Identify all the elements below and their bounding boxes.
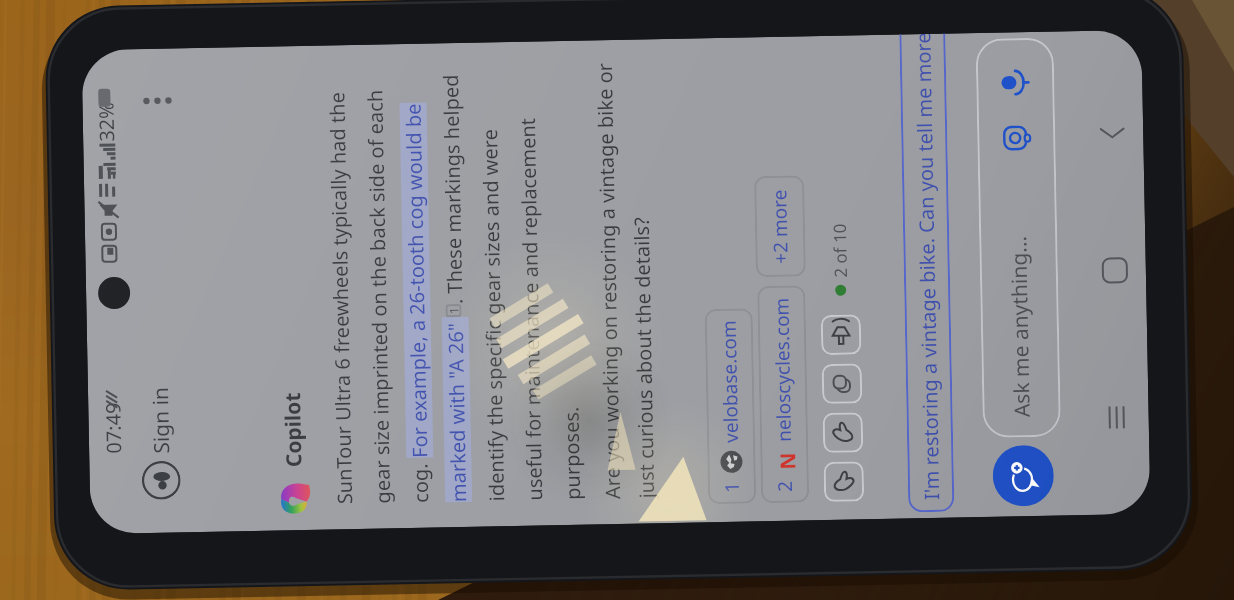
button[interactable]: For example, a 26-tooth cog would be [399, 103, 433, 458]
staticText: 1 [445, 307, 462, 314]
staticText: 1 [719, 482, 745, 493]
staticText: I'm restoring a vintage bike. Can you te… [909, 34, 945, 500]
staticText: 2 of 10 [828, 222, 852, 278]
button[interactable]: Recent apps [1088, 388, 1147, 447]
button[interactable]: marked with "A 26" [442, 317, 472, 502]
button[interactable]: Dislike [823, 461, 864, 502]
staticText: cog. [406, 457, 434, 503]
button[interactable]: Scan [996, 118, 1037, 159]
button[interactable]: Copy [822, 363, 862, 404]
staticText: 07:49 [99, 401, 127, 454]
staticText: Copilot [278, 392, 308, 467]
staticText: N [773, 452, 796, 470]
staticText: . These markings helped [437, 74, 468, 304]
button[interactable]: Read aloud [821, 314, 861, 355]
staticText: gear size imprinted on the back side of … [361, 89, 396, 504]
button[interactable]: 2 [757, 285, 809, 503]
staticText: neloscycles.com [768, 297, 797, 442]
staticText: Are you working on restoring a vintage b… [591, 62, 626, 499]
button[interactable]: Back [1083, 103, 1142, 162]
button[interactable]: Sign in [146, 386, 176, 454]
staticText: useful for maintenance and replacement [514, 117, 548, 501]
button[interactable]: New chat [992, 445, 1054, 507]
button[interactable]: More options [136, 74, 179, 127]
staticText: purposes. [557, 406, 586, 500]
staticText: 2 [772, 480, 798, 492]
button[interactable]: Account [141, 460, 181, 500]
staticText: identify the specific gear sizes and wer… [476, 128, 510, 501]
staticText: marked with "A 26" [442, 317, 472, 502]
button[interactable]: 1 [704, 308, 756, 504]
button[interactable]: Like [823, 412, 863, 453]
staticText: For example, a 26-tooth cog would be [399, 103, 433, 458]
staticText: +2 more [766, 189, 794, 264]
staticText: Ask me anything... [1004, 235, 1037, 417]
staticText: just curious about the details? [628, 216, 660, 499]
button[interactable]: +2 more [754, 175, 806, 277]
staticText: Sign in [146, 386, 176, 454]
button[interactable]: Ask me anything... [975, 38, 1061, 438]
staticText: velobase.com [716, 320, 744, 443]
staticText: SunTour Ultra 6 freewheels typically had… [323, 91, 358, 504]
button[interactable]: I'm restoring a vintage bike. Can you te… [899, 34, 954, 512]
staticText: 32% [92, 101, 120, 142]
button[interactable]: Voice input [995, 62, 1036, 103]
button[interactable]: Home [1085, 241, 1144, 300]
